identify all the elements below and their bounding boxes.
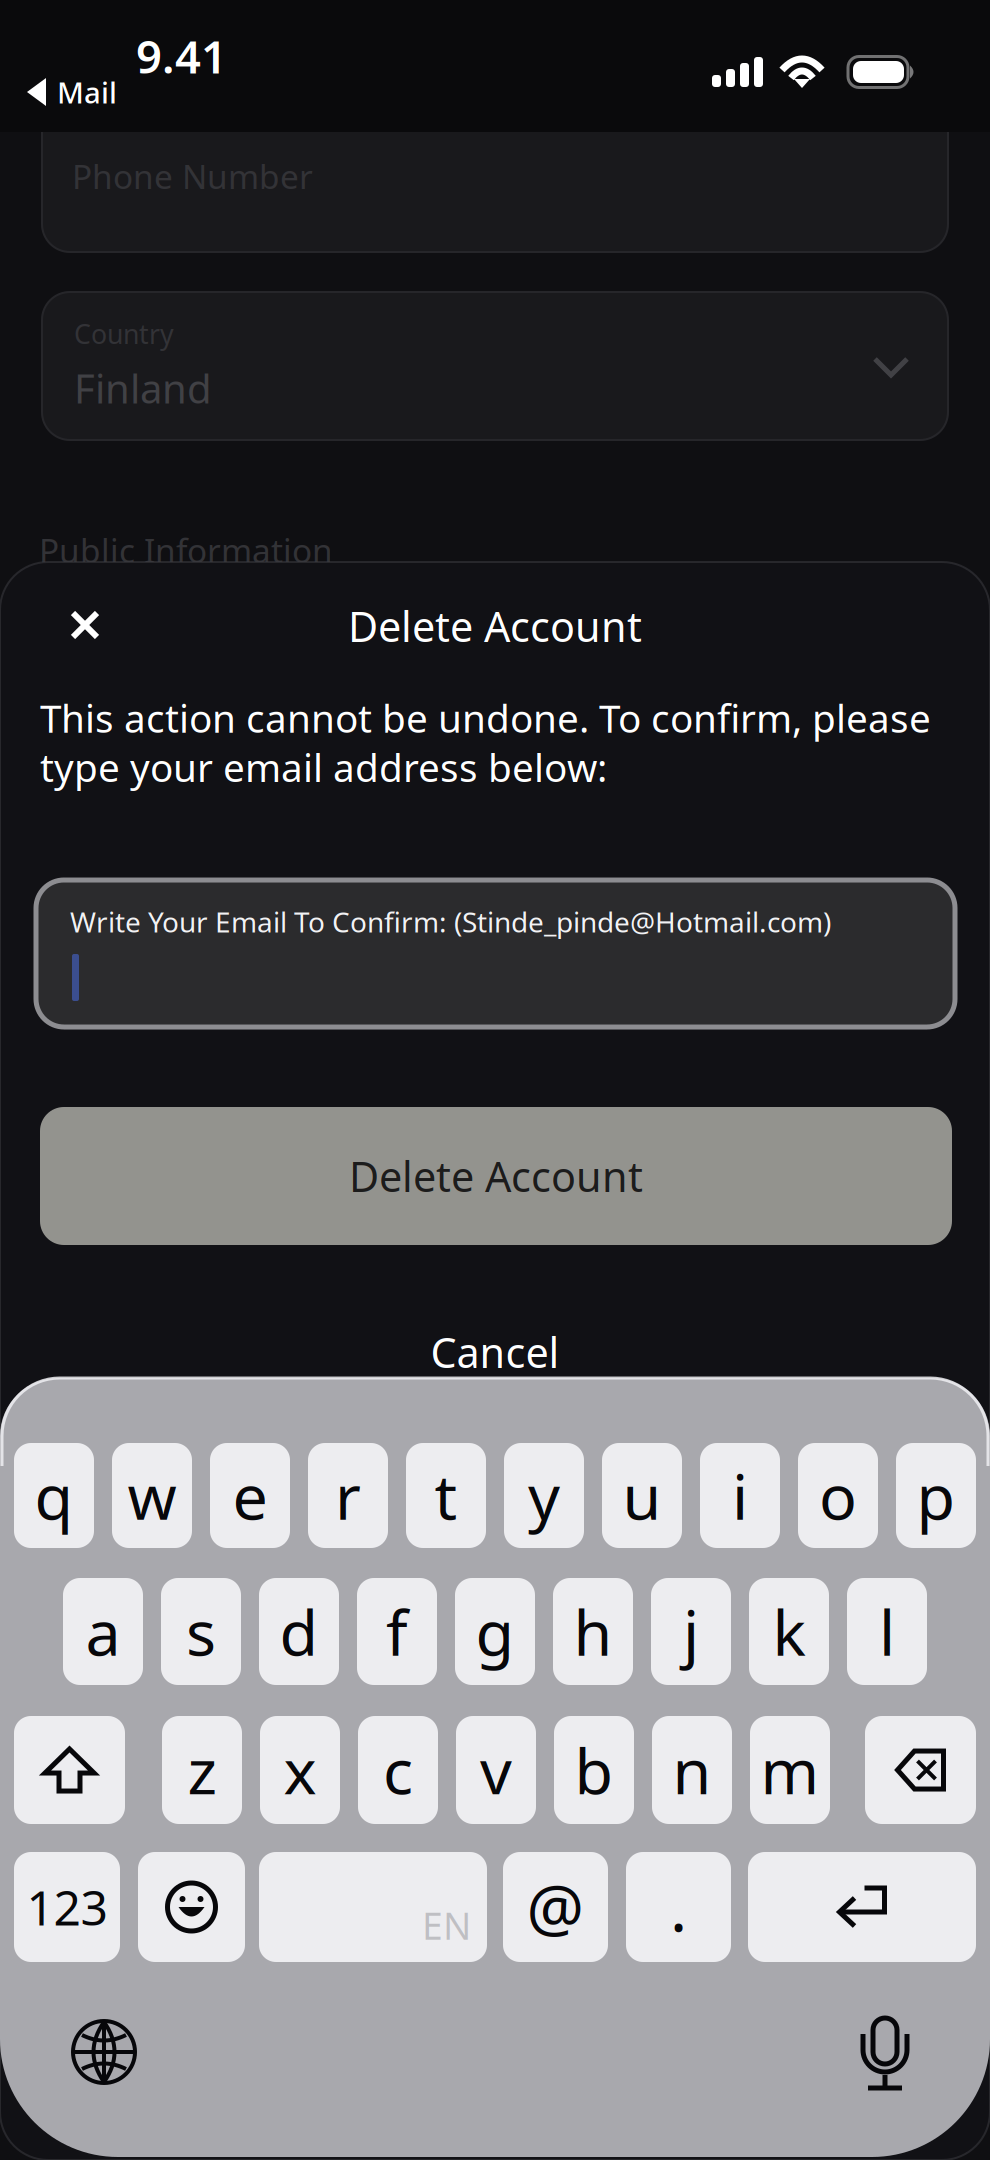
button[interactable]: f	[357, 1578, 437, 1685]
button[interactable]: i	[700, 1443, 780, 1548]
button[interactable]: .	[626, 1852, 731, 1962]
staticText: o	[819, 1454, 857, 1537]
button[interactable]: w	[112, 1443, 192, 1548]
staticText: 9.41	[136, 26, 227, 86]
staticText: i	[732, 1454, 748, 1537]
staticText: 123	[26, 1875, 107, 1939]
button[interactable]: m	[750, 1716, 830, 1824]
button[interactable]: Cancel	[370, 1322, 620, 1382]
staticText: r	[335, 1454, 361, 1537]
button[interactable]: u	[602, 1443, 682, 1548]
staticText: l	[879, 1590, 895, 1673]
button[interactable]: Dictate	[861, 2018, 909, 2092]
button[interactable]: Numbers	[14, 1852, 120, 1962]
button[interactable]: Space	[259, 1852, 487, 1962]
button[interactable]: Delete Account	[40, 1107, 952, 1245]
button[interactable]: Close	[40, 588, 130, 662]
staticText: n	[672, 1728, 711, 1812]
button[interactable]: a	[63, 1578, 143, 1685]
button[interactable]: Emoji	[138, 1852, 245, 1962]
staticText: a	[85, 1590, 120, 1673]
staticText: Write Your Email To Confirm: (Stinde_pin…	[70, 903, 831, 940]
staticText: @	[526, 1864, 584, 1949]
staticText: q	[34, 1454, 73, 1537]
staticText: Delete Account	[349, 1149, 643, 1203]
staticText: s	[186, 1590, 216, 1673]
staticText: f	[386, 1590, 408, 1673]
button[interactable]: x	[260, 1716, 340, 1824]
staticText: k	[772, 1590, 805, 1673]
staticText: v	[480, 1728, 512, 1812]
staticText: EN	[422, 1900, 471, 1950]
staticText: Cancel	[430, 1325, 559, 1379]
button[interactable]: Delete	[865, 1716, 976, 1824]
staticText: Country	[74, 316, 174, 351]
staticText: p	[916, 1454, 955, 1537]
staticText: m	[760, 1728, 819, 1812]
staticText: c	[383, 1728, 413, 1812]
button[interactable]: h	[553, 1578, 633, 1685]
button[interactable]: y	[504, 1443, 584, 1548]
staticText: t	[434, 1454, 457, 1537]
staticText: type your email address below:	[40, 741, 607, 793]
button[interactable]: l	[847, 1578, 927, 1685]
button[interactable]: v	[456, 1716, 536, 1824]
button[interactable]: e	[210, 1443, 290, 1548]
button[interactable]: b	[554, 1716, 634, 1824]
button[interactable]: g	[455, 1578, 535, 1685]
button[interactable]: Mail	[26, 76, 246, 108]
button[interactable]: c	[358, 1716, 438, 1824]
button[interactable]: Switch keyboard	[71, 2019, 137, 2085]
button[interactable]: z	[162, 1716, 242, 1824]
staticText: This action cannot be undone. To confirm…	[40, 692, 931, 743]
button[interactable]: k	[749, 1578, 829, 1685]
staticText: x	[283, 1728, 316, 1812]
staticText: j	[683, 1590, 699, 1673]
button[interactable]: d	[259, 1578, 339, 1685]
staticText: w	[127, 1454, 176, 1537]
staticText: Phone Number	[72, 154, 313, 198]
button[interactable]: j	[651, 1578, 731, 1685]
button[interactable]: Return	[748, 1852, 976, 1962]
button[interactable]: r	[308, 1443, 388, 1548]
button[interactable]: o	[798, 1443, 878, 1548]
staticText: .	[670, 1864, 687, 1949]
button[interactable]: Shift	[14, 1716, 125, 1824]
staticText: Mail	[57, 72, 117, 111]
button[interactable]: n	[652, 1716, 732, 1824]
staticText: e	[232, 1454, 267, 1537]
staticText: y	[528, 1454, 560, 1537]
staticText: Public Information	[39, 528, 333, 572]
button[interactable]: p	[896, 1443, 976, 1548]
staticText: h	[573, 1590, 612, 1673]
button[interactable]: t	[406, 1443, 486, 1548]
staticText: g	[475, 1590, 514, 1673]
button[interactable]: @	[503, 1852, 608, 1962]
button[interactable]: q	[14, 1443, 94, 1548]
staticText: d	[279, 1590, 318, 1673]
staticText: Delete Account	[348, 599, 642, 653]
staticText: z	[187, 1728, 216, 1812]
staticText: Finland	[74, 361, 212, 414]
staticText: u	[622, 1454, 661, 1537]
button[interactable]: s	[161, 1578, 241, 1685]
staticText: b	[574, 1728, 613, 1812]
